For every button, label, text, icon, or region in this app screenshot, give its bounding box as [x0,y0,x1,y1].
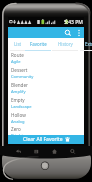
button[interactable]: Hollow [8,111,84,126]
staticText: Hollow [11,112,26,118]
staticText: Agile [11,59,21,65]
staticText: Community [11,74,34,80]
button[interactable]: Dessert [8,66,84,81]
staticText: Dessert [11,67,28,73]
staticText: 5:43 PM [64,19,83,26]
button[interactable]: More options [74,27,84,38]
staticText: Route [11,52,24,58]
button[interactable]: Clear All Favorite [8,135,84,144]
button[interactable]: Route [8,51,84,66]
staticText: Empty [11,97,25,103]
button[interactable]: Extra [80,38,92,51]
button[interactable]: List [10,38,25,51]
staticText: Blender [11,82,28,88]
staticText: Clear All Favorite [23,136,63,143]
staticText: Bright [11,133,23,135]
button[interactable]: Search [62,27,74,38]
staticText: Favorite [30,41,47,47]
button[interactable]: Favorite [25,38,51,51]
staticText: List [14,41,22,47]
staticText: Landscape [11,104,32,110]
button[interactable]: Blender [8,81,84,96]
button[interactable]: History [52,38,78,51]
staticText: History [58,41,73,47]
staticText: Zero [11,126,21,132]
button[interactable]: Empty [8,96,84,111]
staticText: Amplify [11,89,26,95]
staticText: Extra [85,41,92,47]
button[interactable]: Zero [8,126,84,135]
staticText: Analog [11,119,25,125]
